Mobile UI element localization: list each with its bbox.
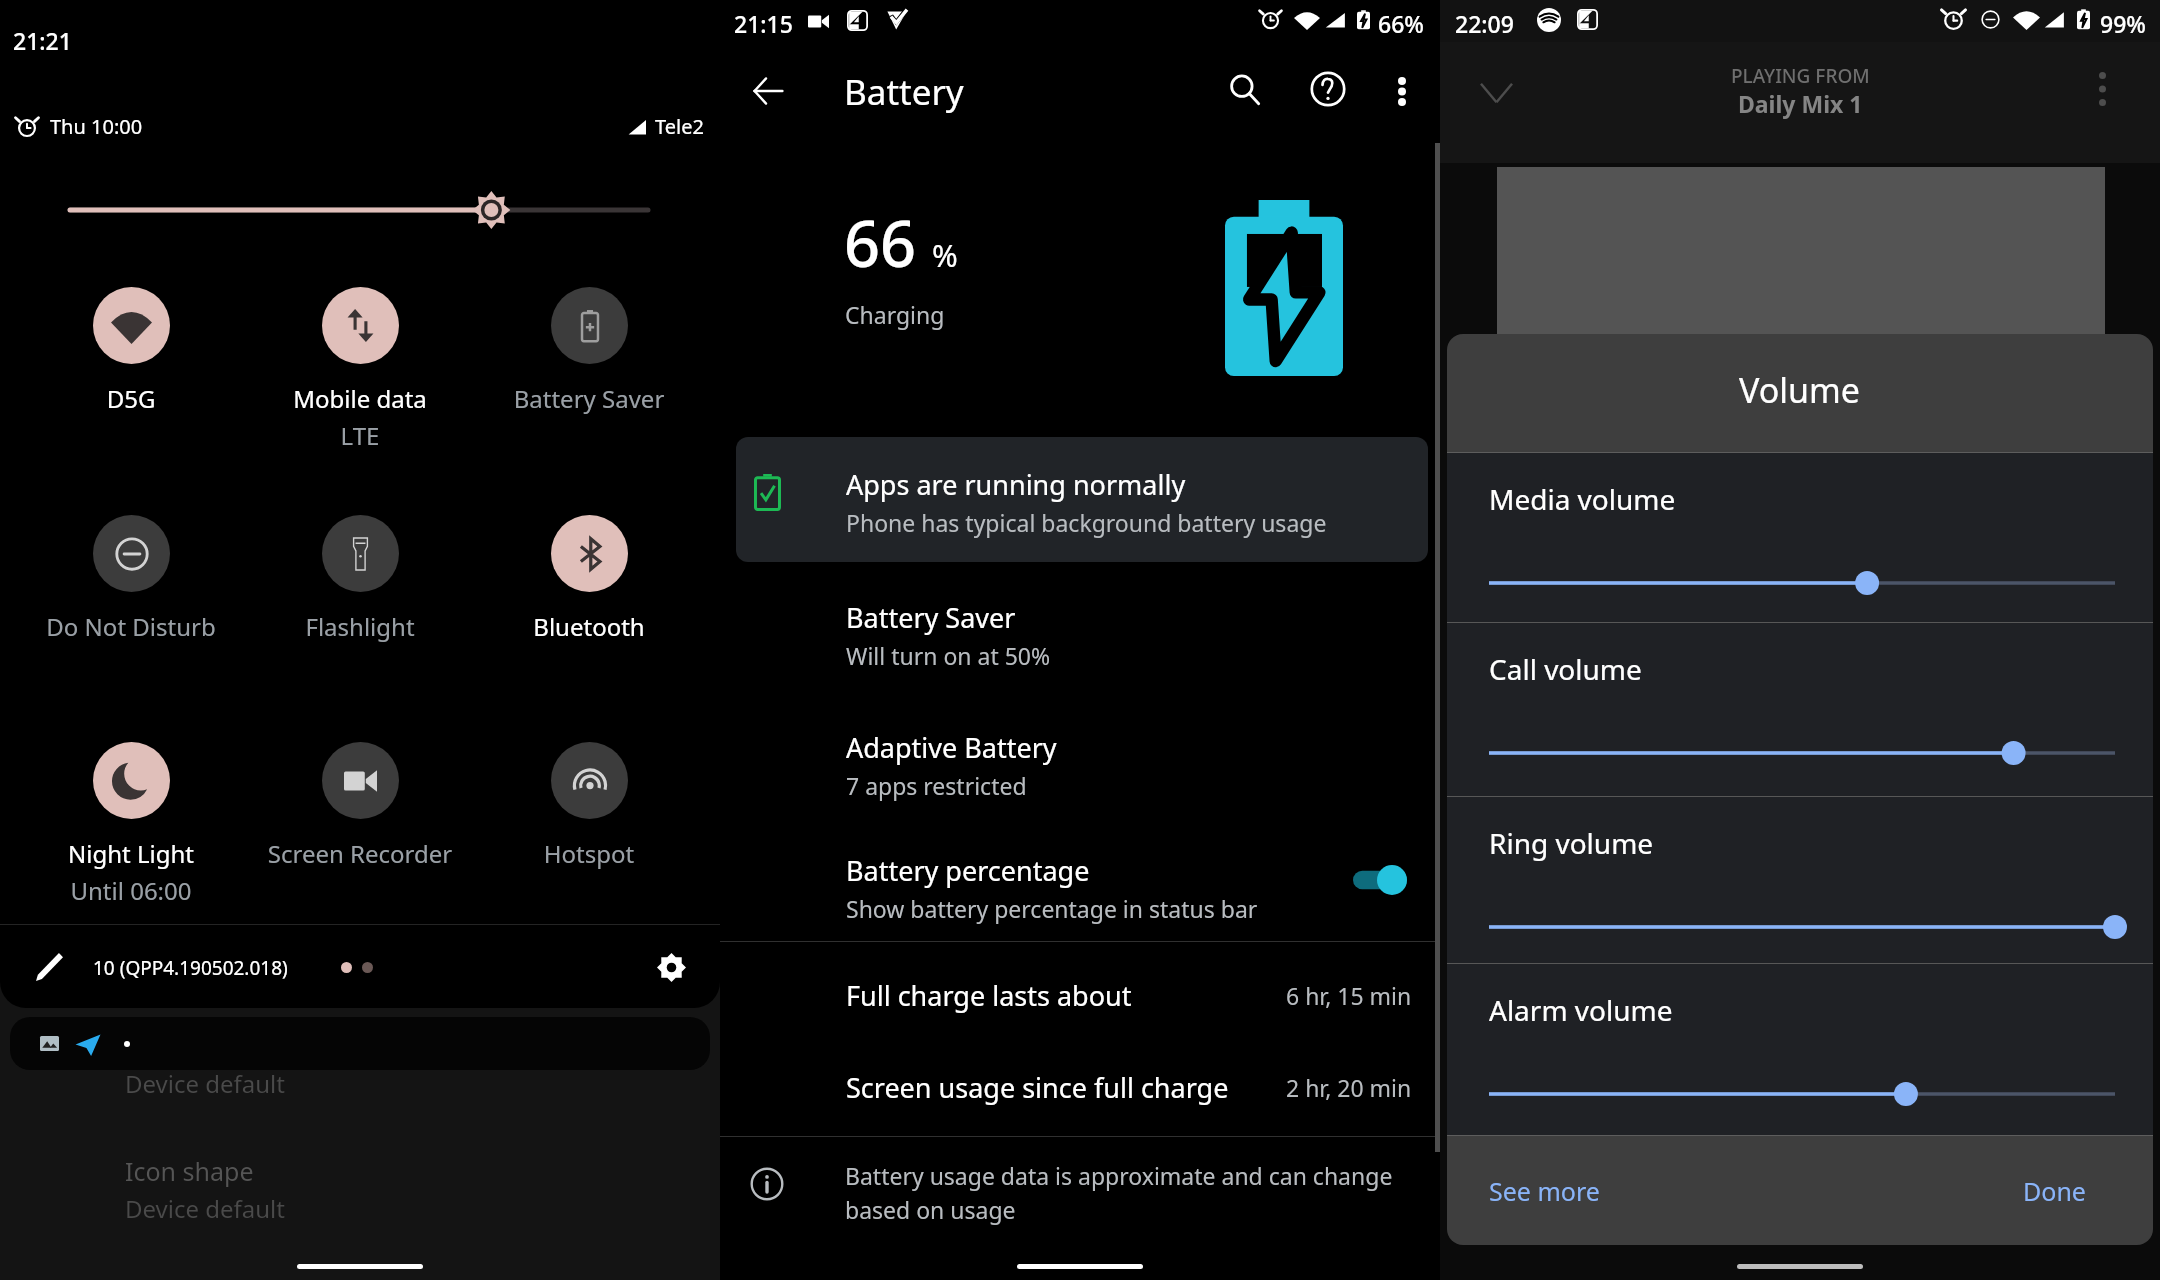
staticText: 66%	[1378, 8, 1424, 39]
staticText: D5G	[17, 382, 245, 415]
staticText: Device default	[125, 1192, 285, 1225]
staticText: See more	[1489, 1174, 1600, 1208]
button[interactable]: Ring volume	[1447, 797, 2153, 963]
staticText: Show battery percentage in status bar	[846, 893, 1258, 924]
staticText: PLAYING FROM	[1731, 63, 1870, 89]
button[interactable]: Back	[744, 67, 792, 115]
button[interactable]: Mobile data	[246, 287, 474, 452]
staticText: Call volume	[1489, 650, 1642, 688]
staticText: Charging	[845, 299, 945, 330]
staticText: Flashlight	[246, 610, 474, 643]
button[interactable]: Flashlight	[246, 515, 474, 643]
staticText: Screen usage since full charge	[846, 1069, 1229, 1106]
staticText: Phone has typical background battery usa…	[846, 507, 1327, 538]
button[interactable]: Battery Saver	[720, 599, 1440, 699]
staticText: 66	[844, 200, 917, 286]
staticText: Will turn on at 50%	[846, 640, 1051, 671]
button[interactable]: Search	[1220, 65, 1268, 113]
staticText: Icon shape	[125, 1154, 254, 1188]
staticText: 22:09	[1455, 8, 1514, 39]
staticText: 6 hr, 15 min	[1286, 980, 1412, 1011]
staticText: Apps are running normally	[846, 466, 1186, 503]
staticText: Daily Mix 1	[1738, 88, 1863, 119]
staticText: Device default	[125, 1067, 285, 1100]
staticText: Night Light	[17, 837, 245, 870]
button[interactable]: Full charge lasts about	[720, 977, 1440, 1033]
button[interactable]: Collapse	[1480, 82, 1513, 104]
button[interactable]: Screen usage since full charge	[720, 1069, 1440, 1125]
button[interactable]: Media volume	[1447, 453, 2153, 622]
staticText: 2 hr, 20 min	[1286, 1072, 1412, 1103]
staticText: Battery Saver	[846, 599, 1016, 636]
button[interactable]: Night Light	[17, 742, 245, 907]
staticText: Volume	[1739, 367, 1861, 413]
button[interactable]: Call volume	[1447, 623, 2153, 796]
staticText: 99%	[2100, 8, 2146, 39]
staticText: Media volume	[1489, 480, 1676, 518]
staticText: 10 (QPP4.190502.018)	[93, 955, 288, 981]
button[interactable]: More options	[2099, 72, 2106, 106]
staticText: Done	[2023, 1174, 2086, 1208]
staticText: Alarm volume	[1489, 991, 1673, 1029]
staticText: Battery Saver	[475, 382, 703, 415]
staticText: Adaptive Battery	[846, 729, 1057, 766]
staticText: Tele2	[655, 113, 704, 140]
button[interactable]: Screen Recorder	[246, 742, 474, 870]
staticText: 21:15	[734, 8, 793, 39]
staticText: Ring volume	[1489, 824, 1654, 862]
staticText: Hotspot	[475, 837, 703, 870]
button[interactable]: Adaptive Battery	[720, 729, 1440, 829]
button[interactable]: Apps are running normally	[736, 437, 1428, 562]
staticText: %	[932, 234, 958, 276]
staticText: Screen Recorder	[246, 837, 474, 870]
button[interactable]: Battery Saver	[475, 287, 703, 415]
staticText: Mobile data	[246, 382, 474, 415]
button[interactable]: Alarm volume	[1447, 964, 2153, 1135]
staticText: Battery percentage	[846, 852, 1090, 889]
staticText: Do Not Disturb	[17, 610, 245, 643]
staticText: LTE	[246, 419, 474, 452]
staticText: 7 apps restricted	[846, 770, 1027, 801]
button[interactable]: Hotspot	[475, 742, 703, 870]
button[interactable]: See more	[1447, 1158, 1616, 1224]
button[interactable]: Help	[1304, 65, 1352, 113]
button[interactable]: Do Not Disturb	[17, 515, 245, 643]
button[interactable]: Done	[2007, 1158, 2153, 1224]
staticText: Until 06:00	[17, 874, 245, 907]
staticText: Bluetooth	[475, 610, 703, 643]
staticText: Full charge lasts about	[846, 977, 1132, 1014]
staticText: Battery usage data is approximate and ca…	[845, 1160, 1431, 1225]
button[interactable]: D5G	[17, 287, 245, 415]
staticText: Battery	[844, 68, 964, 116]
staticText: 21:21	[13, 25, 72, 56]
staticText: Thu 10:00	[50, 113, 143, 140]
button[interactable]: More options	[1378, 67, 1426, 115]
button[interactable]: Settings	[647, 943, 695, 991]
button[interactable]: Battery percentage	[720, 852, 1440, 952]
button[interactable]: Edit tiles	[24, 946, 74, 988]
button[interactable]: Bluetooth	[475, 515, 703, 643]
